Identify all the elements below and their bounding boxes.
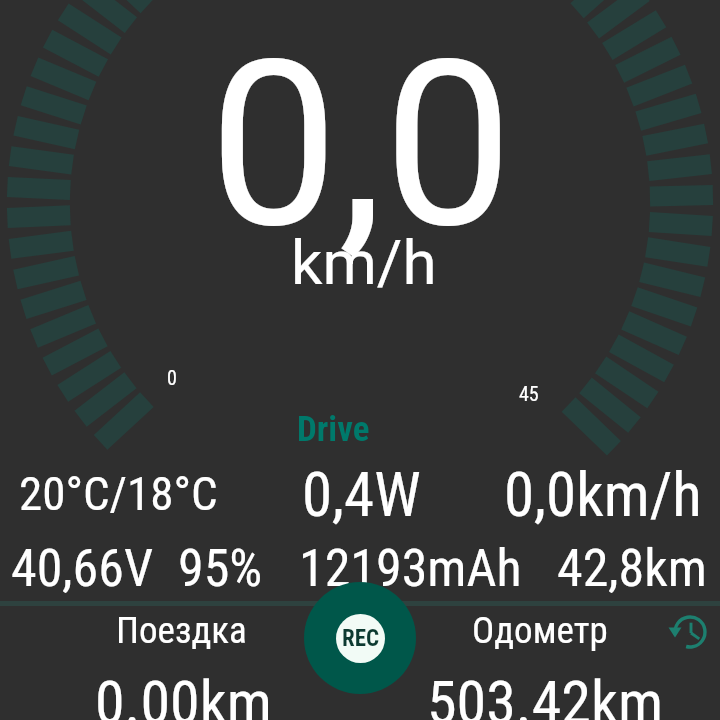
staticText: 0,0km/h xyxy=(504,459,702,530)
staticText: 95% xyxy=(178,538,263,599)
staticText: 45 xyxy=(519,382,539,405)
staticText: 0 xyxy=(167,366,177,389)
staticText: Одометр xyxy=(472,609,608,652)
staticText: 0,4W xyxy=(302,459,421,530)
staticText: 12193mAh xyxy=(299,538,522,599)
staticText: 42,8km xyxy=(557,538,707,599)
button[interactable]: Trip history xyxy=(666,608,714,656)
staticText: 0.00km xyxy=(95,667,272,720)
staticText: km/h xyxy=(291,226,437,299)
staticText: REC xyxy=(342,625,380,652)
staticText: Drive xyxy=(297,409,370,450)
staticText: Поездка xyxy=(116,609,247,652)
button[interactable]: Record trip xyxy=(304,582,416,694)
staticText: 503.42km xyxy=(427,667,664,720)
staticText: 20°C/18°C xyxy=(19,466,218,521)
staticText: 0,0 xyxy=(209,11,513,281)
staticText: 40,66V xyxy=(11,538,154,599)
